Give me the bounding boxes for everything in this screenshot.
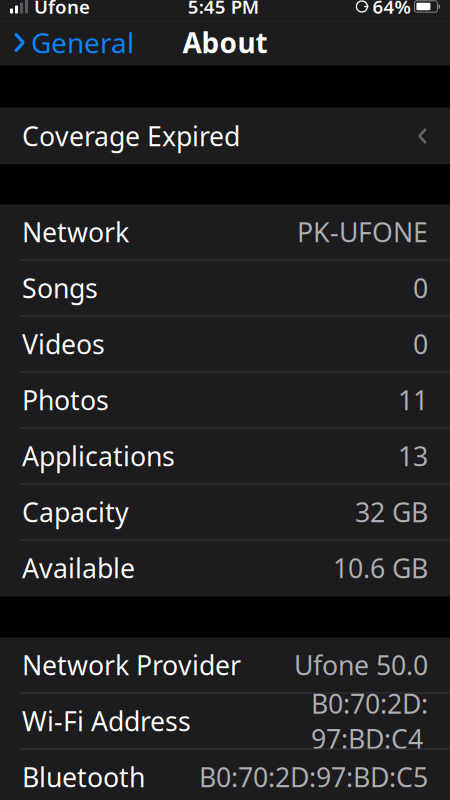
staticText: Ufone 50.0 bbox=[294, 647, 428, 683]
staticText: Videos bbox=[22, 326, 105, 362]
button[interactable]: Capacity bbox=[0, 484, 450, 540]
staticText: 10.6 GB bbox=[333, 550, 428, 586]
button[interactable]: Bluetooth bbox=[0, 749, 450, 800]
staticText: 0 bbox=[413, 326, 428, 362]
staticText: Applications bbox=[22, 438, 175, 474]
button[interactable]: Coverage Expired bbox=[0, 107, 450, 164]
staticText: Wi-Fi Address bbox=[22, 703, 191, 739]
staticText: About bbox=[182, 24, 267, 61]
staticText: 5:45 PM bbox=[188, 0, 259, 19]
button[interactable]: Wi-Fi Address bbox=[0, 693, 450, 749]
button[interactable]: Songs bbox=[0, 260, 450, 316]
button[interactable]: Network bbox=[0, 204, 450, 260]
button[interactable]: Videos bbox=[0, 316, 450, 372]
staticText: B0:70:2D:97:BD:C4 bbox=[311, 686, 428, 756]
staticText: B0:70:2D:97:BD:C5 bbox=[199, 759, 428, 795]
staticText: General bbox=[31, 24, 134, 61]
staticText: 13 bbox=[398, 438, 428, 474]
staticText: 0 bbox=[413, 270, 428, 306]
staticText: Coverage Expired bbox=[22, 118, 240, 154]
staticText: Ufone bbox=[34, 0, 90, 19]
button[interactable]: General bbox=[0, 18, 144, 66]
staticText: 32 GB bbox=[355, 494, 428, 530]
staticText: Photos bbox=[22, 382, 109, 418]
staticText: Network bbox=[22, 214, 129, 250]
staticText: Songs bbox=[22, 270, 98, 306]
staticText: Network Provider bbox=[22, 647, 241, 683]
staticText: Capacity bbox=[22, 494, 129, 530]
button[interactable]: Available bbox=[0, 540, 450, 596]
button[interactable]: Network Provider bbox=[0, 637, 450, 693]
staticText: PK-UFONE bbox=[297, 214, 428, 250]
button[interactable]: Photos bbox=[0, 372, 450, 428]
staticText: Bluetooth bbox=[22, 759, 145, 795]
staticText: Available bbox=[22, 550, 135, 586]
button[interactable]: Applications bbox=[0, 428, 450, 484]
staticText: 64% bbox=[372, 0, 410, 19]
staticText: 11 bbox=[398, 382, 428, 418]
